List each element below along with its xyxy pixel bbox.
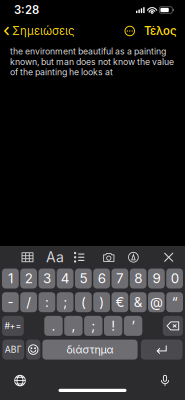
button[interactable]: Camera <box>97 247 121 268</box>
button[interactable]: : <box>38 292 55 312</box>
button[interactable]: the environment beautiful as a painting … <box>0 42 185 77</box>
staticText: 6 <box>98 270 106 286</box>
staticText: 9 <box>152 270 160 286</box>
staticText: 0 <box>171 270 179 286</box>
button[interactable]: ; <box>84 316 102 336</box>
staticText: Τέλος <box>144 24 177 38</box>
button[interactable]: Hide keyboard <box>157 247 181 268</box>
button[interactable]: 1 <box>2 268 19 288</box>
staticText: . <box>51 318 55 334</box>
button[interactable]: Text formatting <box>43 247 67 268</box>
staticText: “ <box>172 294 178 310</box>
button[interactable]: ! <box>104 316 122 336</box>
button[interactable]: Insert table <box>15 247 39 268</box>
staticText: - <box>7 294 13 310</box>
button[interactable]: ) <box>93 292 110 312</box>
button[interactable]: #+= <box>2 316 24 336</box>
staticText: € <box>115 294 124 310</box>
button[interactable]: 5 <box>75 268 92 288</box>
staticText: : <box>45 294 49 310</box>
staticText: / <box>26 294 31 310</box>
button[interactable]: διάστημα <box>42 340 138 360</box>
staticText: Σημειώσεις <box>12 24 74 38</box>
button[interactable]: 4 <box>57 268 74 288</box>
staticText: 8 <box>134 270 142 286</box>
button[interactable]: ’ <box>124 316 142 336</box>
button[interactable]: @ <box>148 292 165 312</box>
button[interactable]: Markup <box>121 247 145 268</box>
button[interactable]: Delete <box>163 316 183 336</box>
staticText: ) <box>99 294 104 310</box>
staticText: 2 <box>25 270 33 286</box>
button[interactable]: More options <box>120 22 139 40</box>
staticText: ’ <box>132 318 135 334</box>
button[interactable]: 2 <box>20 268 37 288</box>
staticText: 3 <box>43 270 51 286</box>
button[interactable]: - <box>2 292 19 312</box>
button[interactable]: Emoji <box>26 340 40 360</box>
button[interactable]: Next keyboard <box>5 370 35 392</box>
button[interactable]: Σημειώσεις <box>0 21 80 41</box>
button[interactable]: . <box>44 316 63 336</box>
staticText: διάστημα <box>66 343 113 356</box>
button[interactable]: 9 <box>148 268 165 288</box>
button[interactable]: ΑΒΓ <box>2 340 24 360</box>
staticText: 7 <box>116 270 124 286</box>
staticText: ; <box>63 294 67 310</box>
staticText: 3:28 <box>14 3 39 17</box>
button[interactable]: € <box>111 292 128 312</box>
button[interactable]: 0 <box>166 268 183 288</box>
staticText: 4 <box>61 270 70 286</box>
button[interactable]: Τέλος <box>139 21 185 41</box>
staticText: & <box>134 294 143 310</box>
button[interactable]: Return <box>141 340 183 360</box>
staticText: , <box>71 318 75 334</box>
staticText: 5 <box>79 270 87 286</box>
button[interactable]: , <box>64 316 83 336</box>
staticText: Aa <box>46 249 64 266</box>
button[interactable]: ( <box>75 292 92 312</box>
button[interactable]: Checklist <box>67 247 91 268</box>
staticText: the environment beautiful as a painting … <box>10 46 174 77</box>
button[interactable]: 6 <box>93 268 110 288</box>
staticText: ! <box>111 318 115 334</box>
button[interactable]: 7 <box>111 268 128 288</box>
staticText: @ <box>150 294 163 310</box>
button[interactable]: & <box>130 292 147 312</box>
button[interactable]: 8 <box>130 268 147 288</box>
staticText: 1 <box>8 270 13 286</box>
staticText: ΑΒΓ <box>5 344 22 355</box>
button[interactable]: / <box>20 292 37 312</box>
staticText: #+= <box>4 321 21 331</box>
staticText: ; <box>91 318 95 334</box>
staticText: ( <box>81 294 86 310</box>
button[interactable]: ; <box>57 292 74 312</box>
button[interactable]: 3 <box>38 268 55 288</box>
button[interactable]: Dictation <box>150 370 180 392</box>
button[interactable]: “ <box>166 292 183 312</box>
